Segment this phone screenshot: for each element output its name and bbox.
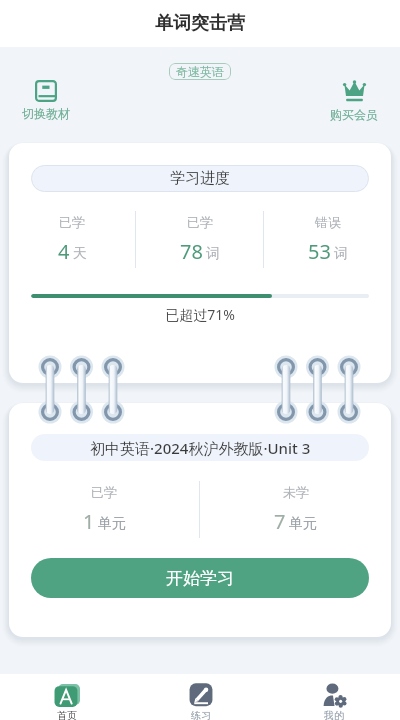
button[interactable]: 开始学习 [31, 558, 369, 598]
staticText: 已学 [187, 214, 213, 230]
staticText: 78 [180, 238, 203, 265]
staticText: 1 [83, 508, 95, 535]
staticText: 词 [206, 245, 220, 263]
staticText: 单元 [98, 515, 126, 533]
staticText: 我的 [324, 709, 344, 720]
staticText: 4 [58, 238, 70, 265]
staticText: 练习 [191, 709, 211, 720]
staticText: 未学 [283, 484, 309, 500]
staticText: 奇速英语 [176, 64, 224, 79]
staticText: 初中英语·2024秋沪外教版·Unit 3 [90, 438, 311, 458]
staticText: 已学 [59, 214, 85, 230]
button[interactable]: 首页 [0, 674, 134, 720]
button[interactable]: 练习 [134, 674, 267, 720]
button[interactable]: 奇速英语 [169, 63, 231, 80]
staticText: 学习进度 [170, 169, 230, 188]
button[interactable]: 学习进度 [31, 165, 369, 192]
staticText: 单词突击营 [155, 12, 245, 35]
staticText: 单元 [289, 515, 317, 533]
staticText: 天 [73, 245, 87, 263]
staticText: 53 [308, 238, 331, 265]
staticText: 已超过71% [9, 305, 391, 324]
button[interactable]: 我的 [267, 674, 400, 720]
staticText: 首页 [57, 709, 77, 720]
button[interactable]: 购买会员 [330, 80, 378, 122]
staticText: 错误 [315, 214, 341, 230]
staticText: 7 [274, 508, 286, 535]
staticText: 词 [334, 245, 348, 263]
button[interactable]: 切换教材 [22, 80, 70, 121]
button[interactable]: 初中英语·2024秋沪外教版·Unit 3 [31, 434, 369, 461]
staticText: 切换教材 [22, 106, 70, 121]
staticText: 已学 [91, 484, 117, 500]
staticText: 开始学习 [166, 568, 234, 589]
staticText: 购买会员 [330, 107, 378, 122]
